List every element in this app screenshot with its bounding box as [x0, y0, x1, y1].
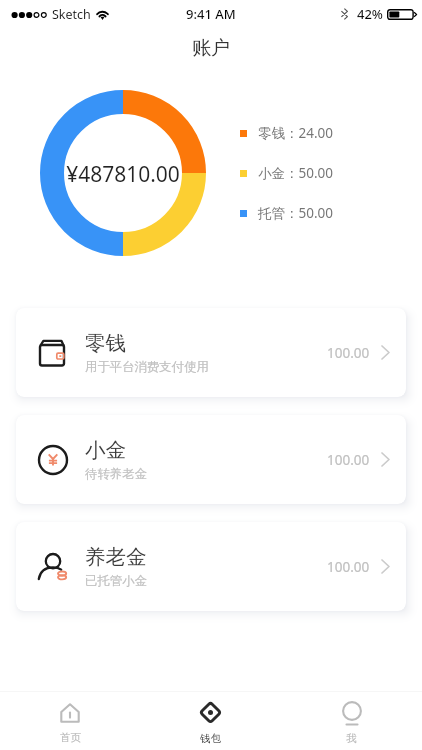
staticText: 首页	[60, 731, 81, 744]
button[interactable]: 钱包	[140, 692, 281, 750]
staticText: ¥487810.00	[66, 160, 180, 189]
button[interactable]: 零钱	[16, 308, 406, 397]
staticText: 托管：50.00	[258, 204, 334, 222]
staticText: 100.00	[327, 558, 370, 576]
staticText: 100.00	[327, 344, 370, 362]
staticText: 用于平台消费支付使用	[85, 359, 209, 375]
staticText: 零钱：24.00	[258, 124, 334, 142]
staticText: 42%	[357, 5, 383, 23]
staticText: 养老金	[85, 544, 147, 570]
button[interactable]: 小金	[16, 415, 406, 504]
staticText: 9:41 AM	[186, 5, 236, 23]
staticText: 零钱	[85, 330, 126, 356]
staticText: 100.00	[327, 451, 370, 469]
button[interactable]: 我	[281, 692, 422, 750]
staticText: 我	[346, 732, 357, 745]
staticText: 待转养老金	[85, 466, 147, 482]
staticText: Sketch	[52, 6, 91, 23]
button[interactable]: 首页	[0, 692, 140, 750]
staticText: 小金：50.00	[258, 164, 334, 182]
staticText: 账户	[192, 36, 230, 60]
button[interactable]: 养老金	[16, 522, 406, 611]
staticText: 钱包	[200, 732, 221, 745]
staticText: 已托管小金	[85, 573, 147, 589]
staticText: 小金	[85, 437, 126, 463]
